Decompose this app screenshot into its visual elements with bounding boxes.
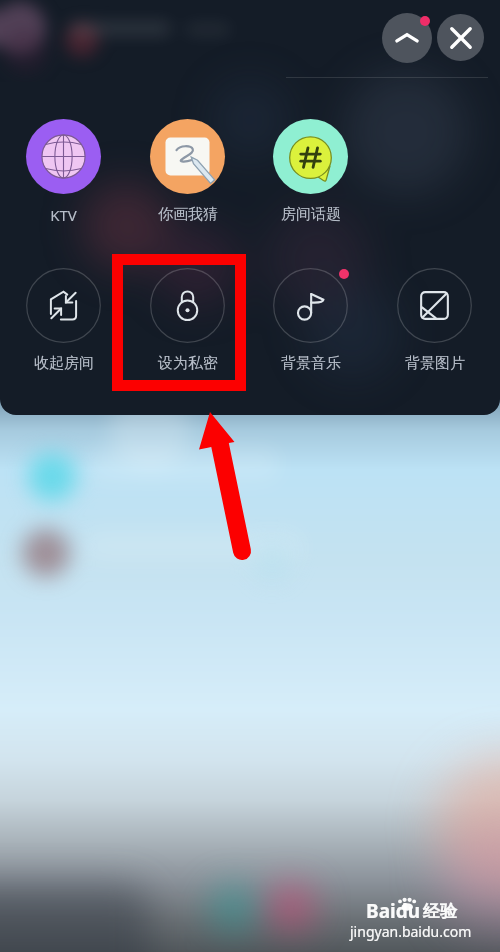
staticText: 背景图片 — [405, 354, 465, 373]
button[interactable]: 背景图片 — [382, 268, 486, 380]
staticText: jingyan.baidu.com — [350, 922, 472, 941]
button[interactable]: 设为私密 — [135, 268, 239, 380]
staticText: Baidu — [366, 898, 421, 922]
staticText: 设为私密 — [158, 354, 218, 373]
button[interactable]: 收起房间 — [11, 268, 115, 380]
button[interactable]: 你画我猜 — [135, 119, 239, 231]
staticText: 房间话题 — [281, 205, 341, 224]
button[interactable]: 房间话题 — [258, 119, 362, 231]
button[interactable]: Collapse panel — [382, 13, 432, 63]
staticText: 背景音乐 — [281, 354, 341, 373]
staticText: 经验 — [423, 901, 457, 922]
staticText: KTV — [50, 205, 77, 225]
staticText: 收起房间 — [34, 354, 94, 373]
button[interactable]: Close — [437, 14, 484, 61]
staticText: 你画我猜 — [158, 205, 218, 224]
button[interactable]: 背景音乐 — [258, 268, 362, 380]
button[interactable]: KTV — [11, 119, 115, 231]
